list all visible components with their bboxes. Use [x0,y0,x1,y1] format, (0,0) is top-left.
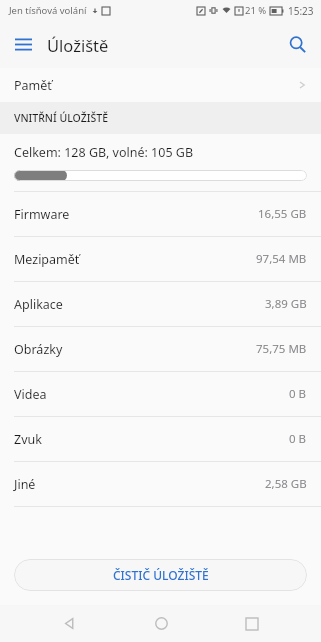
staticText: 75,75 MB [256,341,307,357]
button[interactable]: Back [47,605,91,642]
staticText: Zvuk [14,431,42,448]
button[interactable]: Zvuk [0,417,321,461]
staticText: Mezipaměť [14,251,80,268]
staticText: 3,89 GB [265,296,307,312]
staticText: Aplikace [14,296,63,313]
staticText: 15:23 [288,4,314,18]
staticText: 0 B [289,386,307,402]
staticText: 16,55 GB [258,206,307,222]
staticText: Jen tísňová volání [9,4,87,17]
staticText: Obrázky [14,341,63,358]
button[interactable]: Videa [0,372,321,416]
staticText: 21 % [245,4,267,17]
staticText: 2,58 GB [265,476,307,492]
button[interactable]: Obrázky [0,327,321,371]
staticText: Jiné [14,476,36,493]
button[interactable]: Menu [0,21,47,68]
staticText: 97,54 MB [256,251,307,267]
button[interactable]: ČISTIČ ÚLOŽIŠTĚ [14,559,307,591]
staticText: Celkem: 128 GB, volné: 105 GB [14,144,194,161]
button[interactable]: Jiné [0,462,321,506]
staticText: VNITŘNÍ ÚLOŽIŠTĚ [14,111,108,125]
button[interactable]: Paměť [0,68,321,102]
staticText: ČISTIČ ÚLOŽIŠTĚ [113,567,209,583]
staticText: Videa [14,386,47,403]
staticText: Úložiště [47,34,109,56]
button[interactable]: Search [274,21,321,68]
staticText: Paměť [14,77,52,94]
staticText: Firmware [14,206,70,223]
button[interactable]: Aplikace [0,282,321,326]
button[interactable]: Home [139,605,183,642]
button[interactable]: Mezipaměť [0,237,321,281]
button[interactable]: Recents [230,605,274,642]
staticText: 0 B [289,431,307,447]
button[interactable]: Firmware [0,192,321,236]
